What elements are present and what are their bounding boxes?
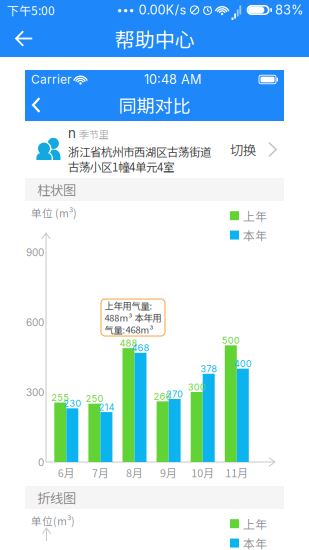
staticText: 11月 (225, 465, 248, 480)
staticText: 柱状图 (37, 180, 76, 199)
button[interactable]: n (25, 121, 284, 178)
staticText: 帮助中心 (114, 24, 194, 53)
button[interactable]: Back (25, 91, 50, 119)
staticText: 同期对比 (118, 92, 190, 118)
staticText: 单位 (m³) (31, 205, 77, 220)
staticText: n (68, 125, 76, 141)
staticText: 10:48 AM (144, 72, 201, 87)
staticText: 468 (131, 342, 149, 353)
staticText: 折线图 (37, 488, 76, 507)
staticText: 上年 (243, 515, 267, 532)
staticText: 270 (166, 388, 183, 400)
staticText: 488m³ 本年用 (104, 311, 161, 324)
staticText: 900 (26, 246, 44, 259)
staticText: 上年 (243, 207, 267, 224)
staticText: 0.00K/s (135, 2, 187, 18)
staticText: 300 (188, 381, 206, 393)
staticText: 单位(m³) (31, 513, 75, 528)
staticText: 400 (234, 358, 252, 369)
staticText: 本年 (243, 226, 267, 244)
staticText: 季节里 (79, 127, 109, 141)
staticText: 488 (119, 337, 137, 349)
staticText: 6月 (58, 465, 75, 480)
staticText: 下午5:00 (7, 1, 55, 19)
staticText: 上年用气量: (104, 299, 152, 312)
staticText: 10月 (191, 465, 214, 480)
staticText: 浙江省杭州市西湖区古荡街道 (68, 143, 211, 160)
staticText: 500 (222, 335, 240, 346)
staticText: 8月 (126, 465, 143, 480)
staticText: 600 (26, 316, 44, 329)
staticText: 7月 (92, 465, 109, 480)
staticText: 214 (98, 401, 114, 413)
staticText: 9月 (160, 465, 177, 480)
staticText: 气量:468m³ (104, 323, 153, 336)
staticText: Carrier (31, 72, 72, 87)
staticText: 255 (51, 392, 69, 403)
button[interactable]: Back (0, 21, 43, 56)
staticText: 250 (85, 393, 103, 404)
staticText: 0 (38, 456, 44, 469)
staticText: 切换 (230, 140, 256, 159)
staticText: 本年 (243, 534, 267, 550)
staticText: 260 (154, 391, 172, 402)
staticText: 83% (275, 2, 303, 18)
staticText: 378 (200, 363, 217, 374)
staticText: 古荡小区1幢4单元4室 (68, 158, 174, 175)
staticText: ••• (117, 3, 135, 16)
staticText: 230 (63, 398, 81, 409)
staticText: 300 (26, 386, 44, 399)
